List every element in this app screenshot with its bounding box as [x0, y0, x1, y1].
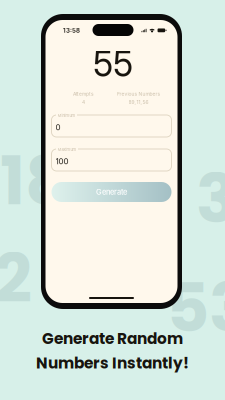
staticText: 4 — [82, 99, 85, 105]
staticText: Maximum — [57, 147, 76, 152]
staticText: Minimum — [57, 113, 75, 118]
staticText: Attempts — [73, 91, 94, 97]
staticText: Generate Random — [42, 328, 183, 349]
staticText: Previous Numbers — [116, 91, 160, 97]
staticText: 53 — [166, 261, 225, 355]
staticText: 18 — [0, 134, 68, 228]
staticText: Generate — [96, 187, 127, 196]
staticText: 3 — [196, 152, 225, 246]
staticText: 89, 11, 56 — [128, 99, 148, 105]
staticText: 55 — [93, 43, 133, 85]
staticText: Numbers Instantly! — [36, 352, 189, 374]
staticText: 13:58 — [63, 27, 80, 34]
staticText: 0 — [55, 122, 60, 132]
button[interactable]: Generate — [51, 182, 171, 202]
staticText: 2 — [0, 232, 32, 326]
staticText: 100 — [55, 156, 68, 166]
